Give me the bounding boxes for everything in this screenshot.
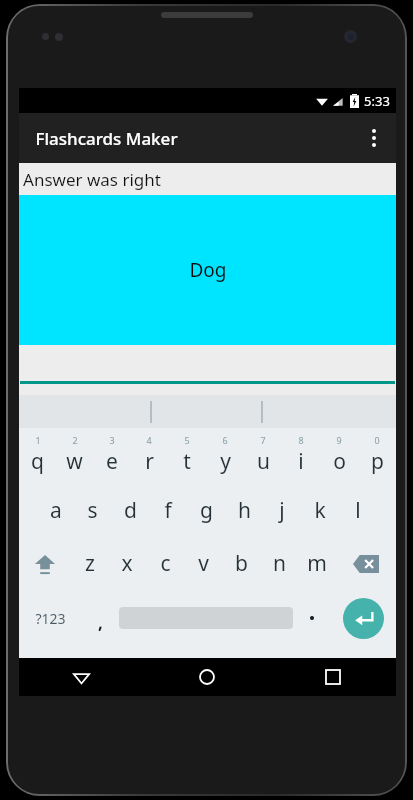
staticText: y: [220, 447, 231, 476]
button[interactable]: 6: [206, 431, 244, 484]
staticText: h: [238, 496, 251, 525]
staticText: 2: [72, 434, 78, 446]
button[interactable]: d: [111, 484, 149, 537]
button[interactable]: m: [298, 537, 336, 590]
staticText: e: [106, 447, 118, 476]
staticText: 5:33: [364, 92, 390, 110]
button[interactable]: l: [339, 484, 377, 537]
button[interactable]: v: [184, 537, 222, 590]
staticText: s: [87, 496, 98, 525]
button[interactable]: j: [263, 484, 301, 537]
button[interactable]: a: [37, 484, 74, 537]
staticText: f: [164, 496, 172, 525]
button[interactable]: 2: [56, 431, 93, 484]
button[interactable]: Back: [19, 658, 144, 696]
button[interactable]: b: [222, 537, 260, 590]
staticText: g: [200, 496, 213, 525]
staticText: 0: [374, 434, 380, 446]
button[interactable]: x: [108, 537, 146, 590]
staticText: ,: [98, 611, 103, 634]
button[interactable]: More options: [352, 113, 396, 163]
staticText: r: [145, 447, 154, 476]
button[interactable]: 0: [358, 431, 396, 484]
staticText: c: [160, 549, 171, 578]
staticText: p: [371, 447, 384, 476]
staticText: Flashcards Maker: [35, 127, 178, 150]
button[interactable]: k: [301, 484, 339, 537]
staticText: ?123: [35, 609, 66, 628]
button[interactable]: f: [149, 484, 187, 537]
staticText: d: [124, 496, 137, 525]
staticText: 9: [336, 434, 342, 446]
staticText: n: [273, 549, 286, 578]
staticText: z: [85, 549, 95, 578]
button[interactable]: 7: [244, 431, 282, 484]
staticText: 6: [222, 434, 228, 446]
button[interactable]: Shift: [19, 537, 71, 590]
button[interactable]: z: [71, 537, 108, 590]
staticText: x: [121, 549, 133, 578]
staticText: b: [235, 549, 248, 578]
staticText: Answer was right: [23, 168, 161, 191]
staticText: v: [198, 549, 209, 578]
button[interactable]: n: [260, 537, 298, 590]
button[interactable]: Space: [119, 590, 293, 646]
button[interactable]: 4: [130, 431, 168, 484]
button[interactable]: 9: [320, 431, 358, 484]
button[interactable]: Backspace: [336, 537, 396, 590]
staticText: i: [298, 447, 304, 476]
button[interactable]: 8: [282, 431, 320, 484]
staticText: 8: [298, 434, 304, 446]
button[interactable]: ?123: [19, 590, 82, 646]
button[interactable]: Enter: [330, 590, 396, 646]
staticText: a: [50, 496, 62, 525]
staticText: 3: [109, 434, 115, 446]
staticText: k: [314, 496, 326, 525]
staticText: q: [31, 447, 44, 476]
button[interactable]: s: [74, 484, 111, 537]
button[interactable]: Home: [144, 658, 270, 696]
staticText: w: [66, 447, 83, 476]
button[interactable]: ,: [82, 590, 119, 646]
button[interactable]: h: [225, 484, 263, 537]
button[interactable]: 5: [168, 431, 206, 484]
staticText: l: [355, 496, 361, 525]
button[interactable]: Dog: [19, 195, 396, 345]
button[interactable]: [293, 590, 330, 646]
staticText: 4: [146, 434, 152, 446]
staticText: Dog: [189, 257, 227, 283]
staticText: 1: [35, 434, 41, 446]
button[interactable]: Recents: [270, 658, 396, 696]
button[interactable]: 1: [19, 431, 56, 484]
staticText: 5: [184, 434, 190, 446]
staticText: t: [183, 447, 191, 476]
button[interactable]: g: [187, 484, 225, 537]
staticText: u: [257, 447, 270, 476]
staticText: m: [307, 549, 327, 578]
staticText: 7: [260, 434, 266, 446]
button[interactable]: 3: [93, 431, 130, 484]
button[interactable]: c: [146, 537, 184, 590]
staticText: j: [279, 496, 285, 525]
staticText: o: [333, 447, 346, 476]
